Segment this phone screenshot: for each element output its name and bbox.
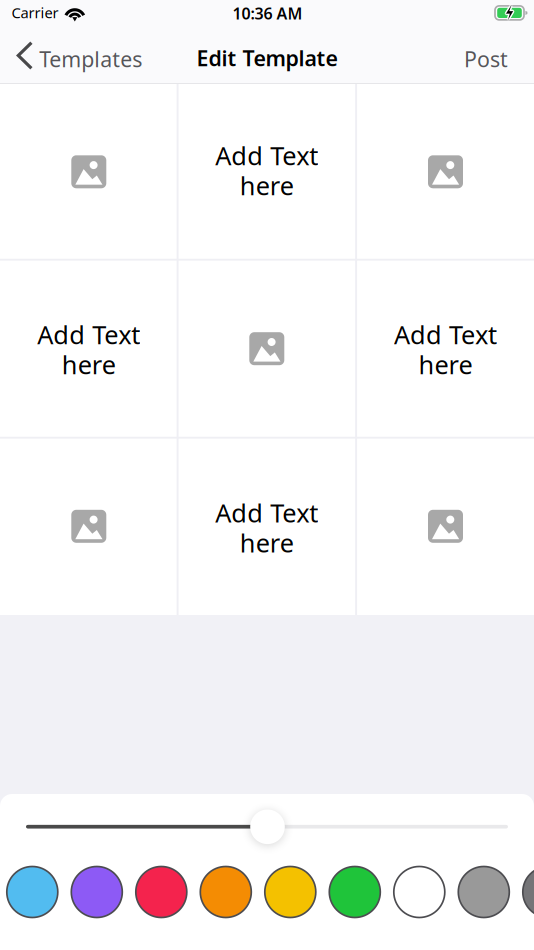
button[interactable]: Add image <box>0 84 178 260</box>
staticText: Add Text <box>215 139 318 172</box>
button[interactable]: Add text <box>178 84 356 260</box>
button[interactable]: Templates <box>8 34 151 84</box>
button[interactable]: Colour swatch <box>136 866 187 917</box>
button[interactable]: Colour swatch <box>523 866 534 917</box>
staticText: Edit Template <box>196 44 337 72</box>
button[interactable]: Add image <box>357 438 534 614</box>
button[interactable]: Add image <box>178 261 356 437</box>
staticText: 10:36 AM <box>232 3 302 24</box>
staticText: Add Text <box>37 317 140 351</box>
staticText: here <box>62 347 116 381</box>
button[interactable]: Colour swatch <box>329 866 380 917</box>
button[interactable]: Add image <box>357 84 534 260</box>
button[interactable]: Add image <box>0 438 178 614</box>
button[interactable]: Add text <box>178 438 356 614</box>
button[interactable]: Colour swatch <box>71 866 122 917</box>
staticText: Carrier <box>11 3 58 22</box>
button[interactable]: Colour swatch <box>265 866 316 917</box>
button[interactable]: Colour swatch <box>200 866 251 917</box>
staticText: Templates <box>39 45 142 73</box>
staticText: here <box>418 347 472 381</box>
staticText: Add Text <box>215 496 318 529</box>
button[interactable]: Colour swatch <box>7 866 58 917</box>
button[interactable]: Post <box>450 33 522 85</box>
button[interactable]: Add text <box>357 261 534 437</box>
button[interactable]: Colour swatch <box>394 866 445 917</box>
button[interactable]: Add text <box>0 261 178 437</box>
button[interactable]: Colour swatch <box>458 866 509 917</box>
staticText: here <box>240 169 294 202</box>
staticText: Add Text <box>394 317 497 351</box>
staticText: here <box>240 526 294 559</box>
staticText: Post <box>464 45 508 73</box>
